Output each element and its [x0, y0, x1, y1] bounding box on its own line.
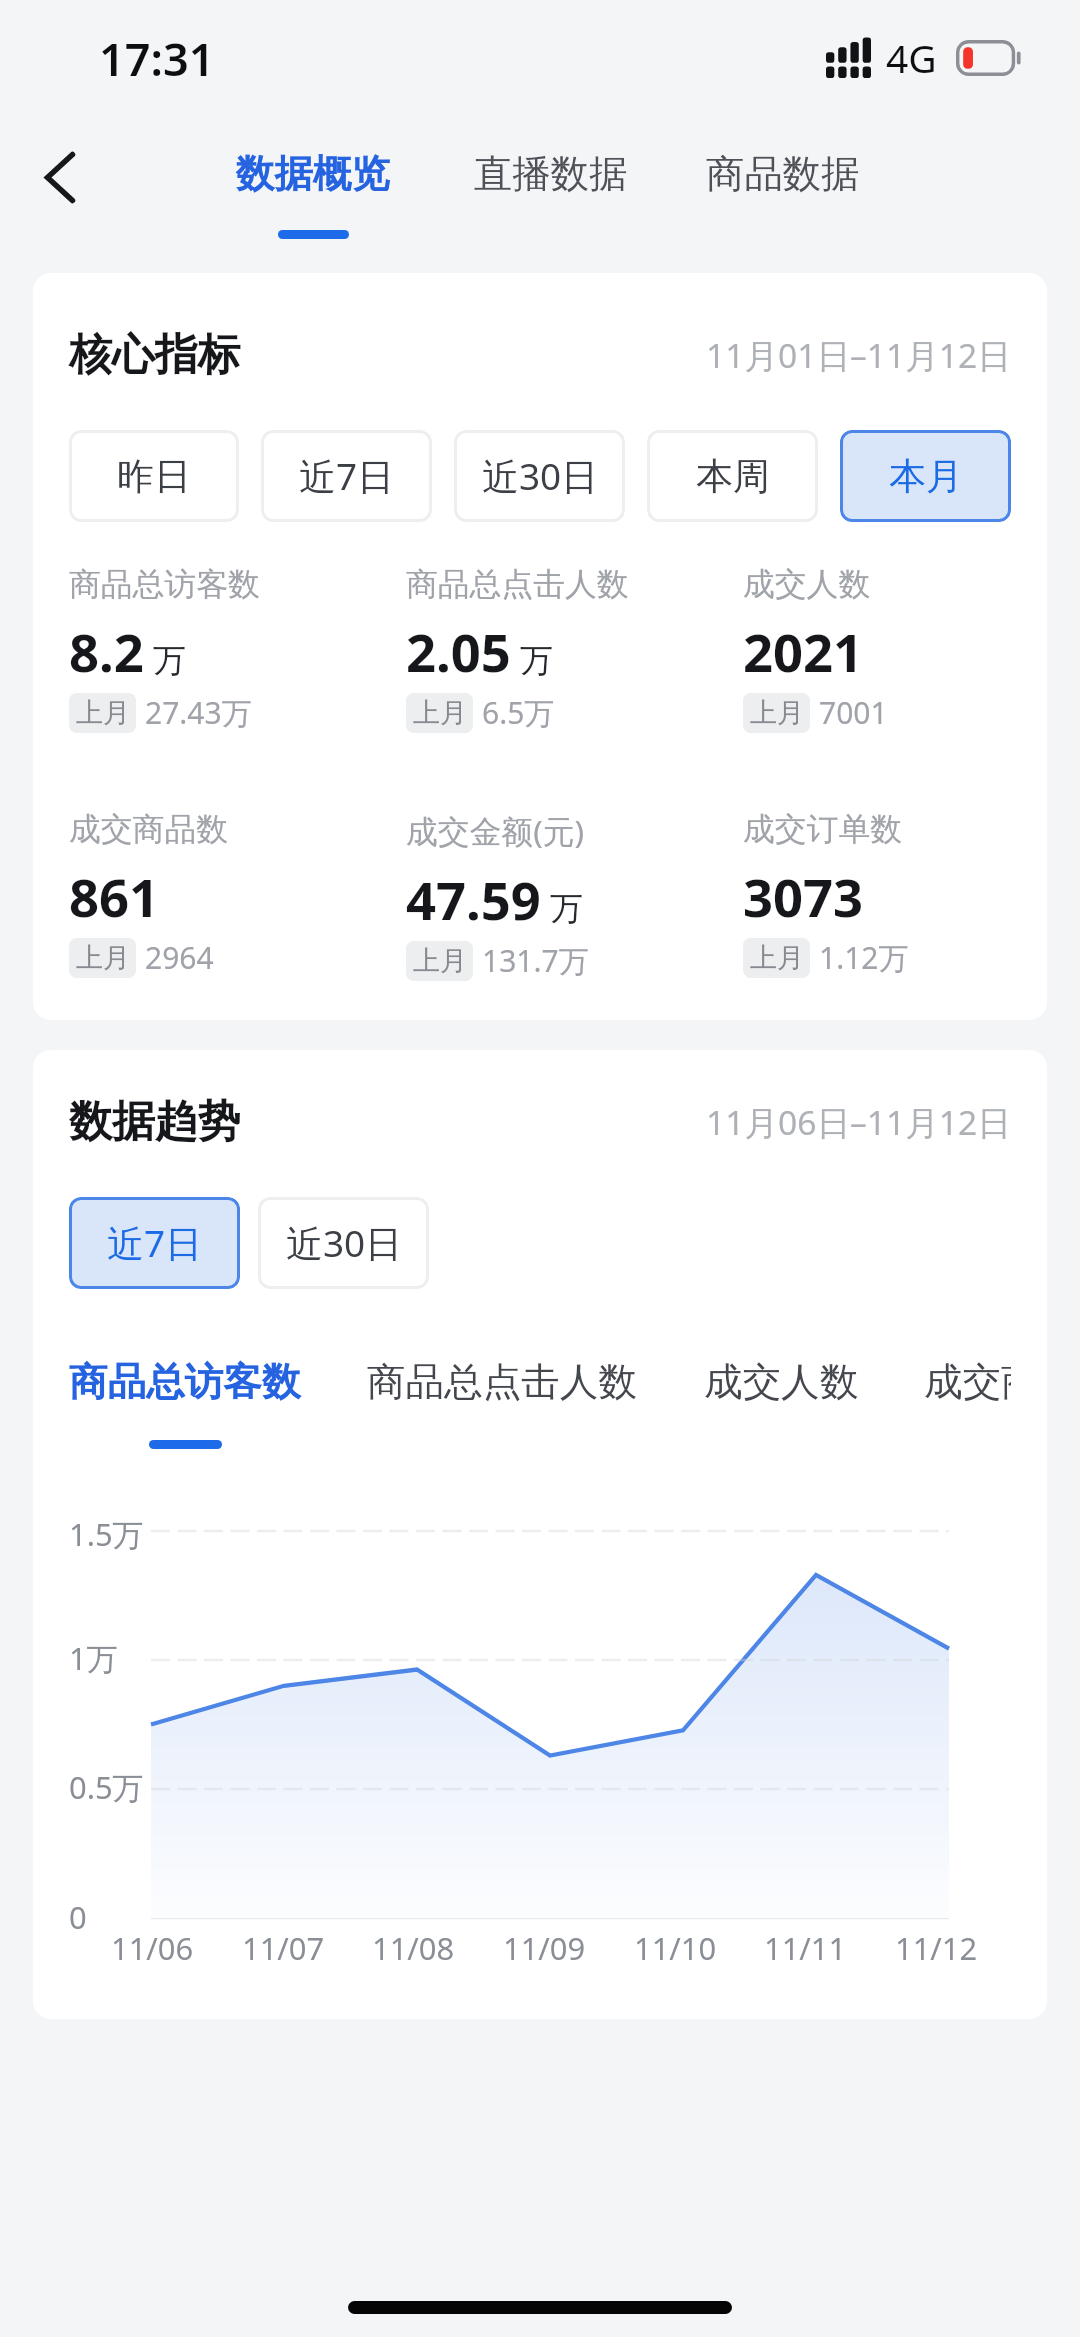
staticText: 11月06日–11月12日	[706, 1099, 1011, 1145]
staticText: 1万	[69, 1637, 118, 1679]
button[interactable]: 昨日	[69, 430, 239, 522]
staticText: 万	[550, 888, 583, 930]
staticText: 近7日	[299, 451, 394, 501]
button[interactable]: 数据概览	[224, 150, 402, 239]
button[interactable]: 直播数据	[462, 150, 640, 239]
staticText: 4G	[886, 31, 937, 84]
staticText: 上月	[413, 696, 467, 730]
staticText: 商品总点击人数	[406, 564, 629, 604]
button[interactable]: 成交人数	[704, 1358, 859, 1449]
staticText: 上月	[413, 944, 467, 978]
button[interactable]: 商品总点击人数	[367, 1358, 637, 1449]
staticText: 数据趋势	[69, 1095, 241, 1149]
staticText: 近7日	[107, 1218, 202, 1268]
staticText: 11/10	[634, 1927, 717, 1969]
staticText: 成交商品数	[69, 809, 228, 849]
staticText: 11/08	[372, 1927, 455, 1969]
staticText: 万	[520, 640, 553, 682]
staticText: 11/11	[764, 1927, 847, 1969]
button[interactable]: 近30日	[454, 430, 625, 522]
staticText: 11/07	[242, 1927, 325, 1969]
staticText: 0	[69, 1896, 87, 1938]
staticText: 成交金额(元)	[406, 809, 585, 852]
staticText: 2.05	[406, 616, 511, 688]
staticText: 商品数据	[706, 150, 860, 198]
staticText: 商品总访客数	[69, 564, 260, 604]
staticText: 核心指标	[69, 328, 241, 382]
staticText: 6.5万	[482, 692, 555, 733]
staticText: 近30日	[482, 451, 598, 501]
staticText: 数据概览	[236, 150, 390, 198]
button[interactable]: 本周	[647, 430, 818, 522]
staticText: 万	[153, 640, 186, 682]
staticText: 0.5万	[69, 1766, 144, 1808]
staticText: 131.7万	[482, 940, 589, 981]
staticText: 7001	[819, 692, 888, 733]
staticText: 本月	[889, 453, 963, 499]
staticText: 2964	[145, 937, 214, 978]
staticText: 2021	[743, 616, 864, 688]
button[interactable]: 商品总访客数	[69, 1358, 301, 1449]
staticText: 上月	[750, 696, 804, 730]
button[interactable]: Back	[6, 141, 114, 213]
staticText: 商品总访客数	[69, 1358, 301, 1407]
staticText: 近30日	[286, 1218, 402, 1268]
staticText: 27.43万	[145, 692, 252, 733]
staticText: 上月	[76, 696, 130, 730]
button[interactable]: 商品数据	[694, 150, 872, 239]
staticText: 17:31	[99, 28, 215, 89]
staticText: 直播数据	[474, 150, 628, 198]
button[interactable]: 近7日	[69, 1197, 240, 1289]
staticText: 商品总点击人数	[367, 1358, 637, 1407]
staticText: 861	[69, 861, 160, 933]
button[interactable]: 近30日	[258, 1197, 429, 1289]
staticText: 成交人数	[704, 1358, 859, 1407]
staticText: 本周	[696, 453, 770, 499]
staticText: 8.2	[69, 616, 144, 688]
staticText: 11/09	[503, 1927, 586, 1969]
staticText: 上月	[76, 941, 130, 975]
button[interactable]: 近7日	[261, 430, 432, 522]
staticText: 11/12	[895, 1927, 978, 1969]
staticText: 成交订单数	[743, 809, 902, 849]
staticText: 上月	[750, 941, 804, 975]
staticText: 1.5万	[69, 1513, 144, 1555]
staticText: 47.59	[406, 864, 541, 936]
staticText: 成交人数	[743, 564, 871, 604]
button[interactable]: 本月	[840, 430, 1011, 522]
staticText: 11/06	[111, 1927, 194, 1969]
staticText: 昨日	[117, 453, 191, 499]
staticText: 1.12万	[819, 937, 909, 978]
button[interactable]: 成交商品数	[924, 1358, 1011, 1449]
staticText: 11月01日–11月12日	[706, 332, 1011, 378]
staticText: 成交商品数	[924, 1358, 1011, 1407]
staticText: 3073	[743, 861, 864, 933]
